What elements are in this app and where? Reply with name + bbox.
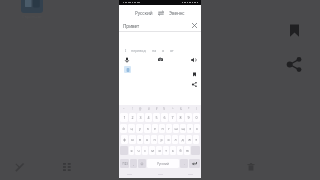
button[interactable]: а <box>144 135 150 144</box>
button[interactable]: Text extract <box>60 160 74 174</box>
staticText: ч <box>137 148 140 153</box>
staticText: и <box>158 148 161 153</box>
staticText: 1 <box>123 115 126 120</box>
staticText: р <box>160 137 163 142</box>
staticText: перевод <box>131 48 146 53</box>
button[interactable]: Voice input <box>122 55 131 64</box>
button[interactable]: ж <box>186 135 192 144</box>
button[interactable]: й <box>120 124 127 133</box>
button[interactable]: ф <box>121 135 128 144</box>
button[interactable]: ю <box>184 146 190 155</box>
button[interactable]: ш <box>173 124 179 133</box>
staticText: Эвенкс <box>169 10 185 16</box>
button[interactable]: Translation card <box>124 66 131 73</box>
staticText: ( <box>196 107 197 111</box>
button[interactable]: ы <box>129 135 136 144</box>
staticText: ц <box>130 126 133 131</box>
button[interactable]: 1 <box>120 113 128 122</box>
staticText: п <box>153 137 156 142</box>
staticText: Русский <box>135 10 153 16</box>
button[interactable]: х <box>194 124 200 133</box>
staticText: 7 <box>171 115 174 120</box>
staticText: а <box>146 137 148 142</box>
button[interactable]: Enter <box>189 159 200 168</box>
staticText: & <box>180 107 182 111</box>
staticText: 6 <box>163 115 166 120</box>
staticText: # <box>148 107 150 111</box>
staticText: * <box>188 107 190 111</box>
button[interactable]: п <box>151 135 157 144</box>
button[interactable]: 7 <box>169 113 176 122</box>
button[interactable]: Share <box>286 56 303 73</box>
staticText: к <box>147 126 149 131</box>
staticText: й <box>122 126 125 131</box>
staticText: на <box>152 48 157 53</box>
button[interactable]: Markup <box>12 160 26 174</box>
button[interactable]: Listen <box>189 55 198 64</box>
button[interactable]: г <box>166 124 172 133</box>
staticText: ы <box>131 137 134 142</box>
button[interactable]: е <box>152 124 158 133</box>
button[interactable]: в <box>137 135 143 144</box>
button[interactable]: э <box>193 135 199 144</box>
button[interactable]: у <box>136 124 143 133</box>
button[interactable]: р <box>158 135 164 144</box>
button[interactable]: Share translation <box>190 80 198 88</box>
staticText: 8 <box>179 115 182 120</box>
button[interactable]: л <box>172 135 178 144</box>
button[interactable]: б <box>177 146 183 155</box>
button[interactable]: 4 <box>145 113 152 122</box>
staticText: х <box>196 126 198 131</box>
staticText: 4 <box>147 115 150 120</box>
button[interactable]: я <box>129 146 134 155</box>
staticText: н <box>161 126 164 131</box>
button[interactable]: Delete <box>244 160 258 174</box>
button[interactable]: 8 <box>177 113 184 122</box>
button[interactable]: с <box>142 146 148 155</box>
button[interactable]: м <box>149 146 155 155</box>
staticText: % <box>163 107 166 111</box>
staticText: 5 <box>155 115 158 120</box>
staticText: Привет <box>123 23 140 29</box>
staticText: , <box>133 162 134 166</box>
button[interactable]: ☺ <box>138 159 146 168</box>
staticText: г <box>168 126 170 131</box>
button[interactable]: 6 <box>161 113 168 122</box>
staticText: ?123 <box>122 162 128 166</box>
button[interactable]: 3 <box>137 113 144 122</box>
staticText: 0 <box>195 115 198 120</box>
staticText: з <box>189 126 191 131</box>
button[interactable]: App icon <box>21 0 43 13</box>
button[interactable]: Camera input <box>156 55 165 64</box>
staticText: щ <box>181 126 185 131</box>
button[interactable]: ч <box>135 146 141 155</box>
button[interactable]: ь <box>170 146 176 155</box>
staticText: ж <box>188 137 191 142</box>
button[interactable]: Save <box>286 22 303 39</box>
button[interactable]: , <box>130 159 137 168</box>
button[interactable]: ?123 <box>120 159 129 168</box>
staticText: I <box>125 48 127 53</box>
button[interactable]: 2 <box>129 113 136 122</box>
button[interactable]: ц <box>128 124 135 133</box>
button[interactable]: т <box>163 146 169 155</box>
button[interactable]: щ <box>180 124 186 133</box>
button[interactable]: 9 <box>185 113 192 122</box>
staticText: ш <box>174 126 178 131</box>
button[interactable]: д <box>179 135 185 144</box>
button[interactable]: з <box>187 124 193 133</box>
button[interactable]: Save translation <box>190 70 198 78</box>
staticText: б <box>179 148 182 153</box>
button[interactable]: к <box>144 124 151 133</box>
button[interactable]: о <box>165 135 171 144</box>
button[interactable]: н <box>159 124 165 133</box>
staticText: в <box>139 137 141 142</box>
staticText: т <box>165 148 167 153</box>
button[interactable]: Русский <box>147 159 179 168</box>
button[interactable]: 0 <box>193 113 200 122</box>
button[interactable]: 5 <box>153 113 160 122</box>
button[interactable]: и <box>156 146 162 155</box>
